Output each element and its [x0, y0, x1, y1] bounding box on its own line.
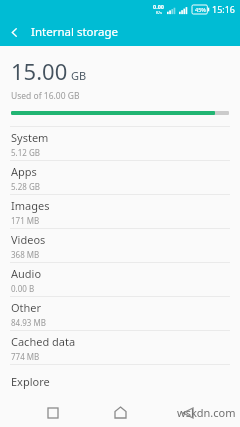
- button[interactable]: Recents: [38, 398, 68, 427]
- staticText: Other: [11, 300, 42, 315]
- button[interactable]: Images: [0, 195, 240, 228]
- staticText: 368 MB: [11, 249, 40, 260]
- staticText: 0.00: [153, 3, 164, 10]
- staticText: Apps: [11, 164, 37, 179]
- staticText: K/s: [156, 10, 162, 15]
- button[interactable]: Back: [173, 398, 203, 427]
- staticText: Explore: [11, 374, 50, 389]
- button[interactable]: Audio: [0, 263, 240, 296]
- staticText: GB: [71, 68, 87, 83]
- staticText: Videos: [11, 232, 46, 247]
- button[interactable]: Back: [0, 18, 28, 46]
- button[interactable]: Videos: [0, 229, 240, 262]
- button[interactable]: Other: [0, 297, 240, 330]
- button[interactable]: System: [0, 127, 240, 160]
- staticText: Cached data: [11, 334, 76, 349]
- button[interactable]: Cached data: [0, 331, 240, 364]
- staticText: Audio: [11, 266, 42, 281]
- button[interactable]: Home: [105, 398, 135, 427]
- staticText: Internal storage: [31, 24, 119, 40]
- staticText: 774 MB: [11, 351, 40, 362]
- staticText: 171 MB: [11, 215, 40, 226]
- staticText: 0.00 B: [11, 283, 35, 294]
- staticText: 15:16: [212, 3, 236, 15]
- staticText: System: [11, 130, 49, 145]
- staticText: 15.00: [11, 56, 68, 86]
- staticText: wskdn.com: [177, 405, 236, 420]
- staticText: 5.12 GB: [11, 147, 40, 158]
- button[interactable]: Apps: [0, 161, 240, 194]
- staticText: Used of 16.00 GB: [11, 90, 80, 102]
- staticText: Images: [11, 198, 50, 213]
- button[interactable]: Explore: [0, 365, 240, 398]
- staticText: 5.28 GB: [11, 181, 40, 192]
- staticText: 84.93 MB: [11, 317, 46, 328]
- staticText: 45%: [195, 6, 206, 13]
